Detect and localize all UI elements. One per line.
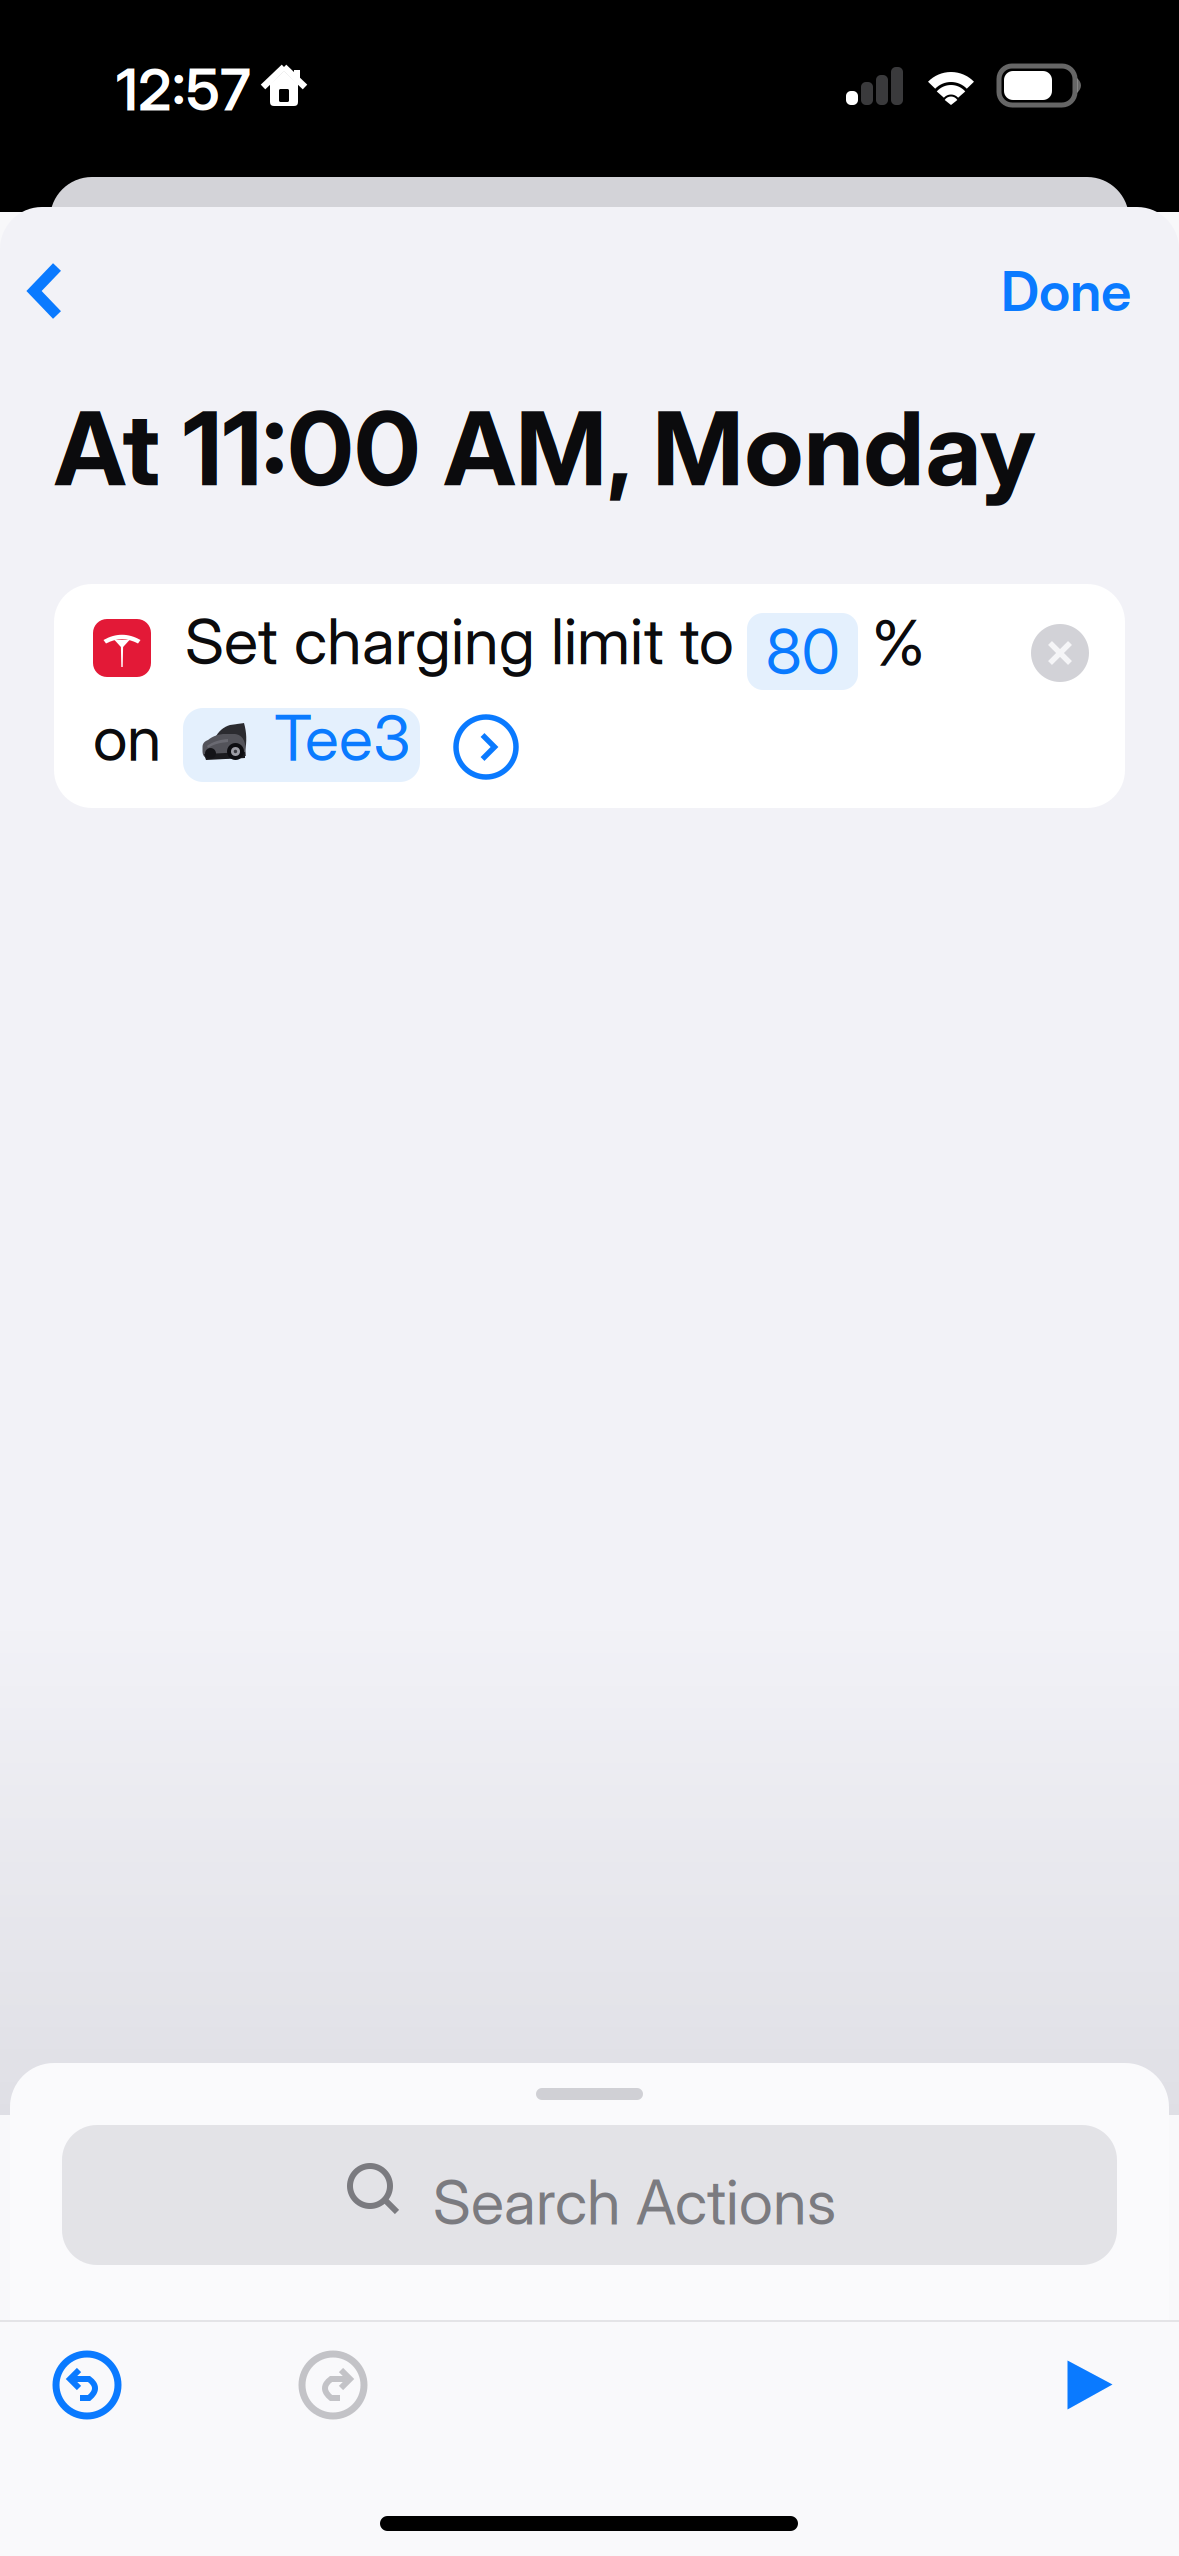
button[interactable]: Back: [0, 243, 94, 339]
staticText: Done: [1001, 258, 1131, 324]
button[interactable]: Run: [1030, 2325, 1150, 2445]
staticText: At 11:00 AM, Monday: [54, 387, 1036, 510]
button[interactable]: Redo: [273, 2325, 393, 2445]
button[interactable]: Done: [961, 243, 1131, 339]
staticText: 80: [765, 614, 839, 689]
staticText: on: [93, 700, 161, 776]
staticText: %: [872, 605, 925, 681]
button[interactable]: Search Actions: [62, 2125, 1117, 2265]
button[interactable]: Set charging limit to: [54, 584, 1125, 808]
button[interactable]: Undo: [27, 2325, 147, 2445]
staticText: 12:57: [116, 55, 251, 124]
staticText: Tee3: [274, 700, 411, 776]
staticText: Set charging limit to: [185, 603, 734, 680]
staticText: Search Actions: [433, 2165, 836, 2239]
